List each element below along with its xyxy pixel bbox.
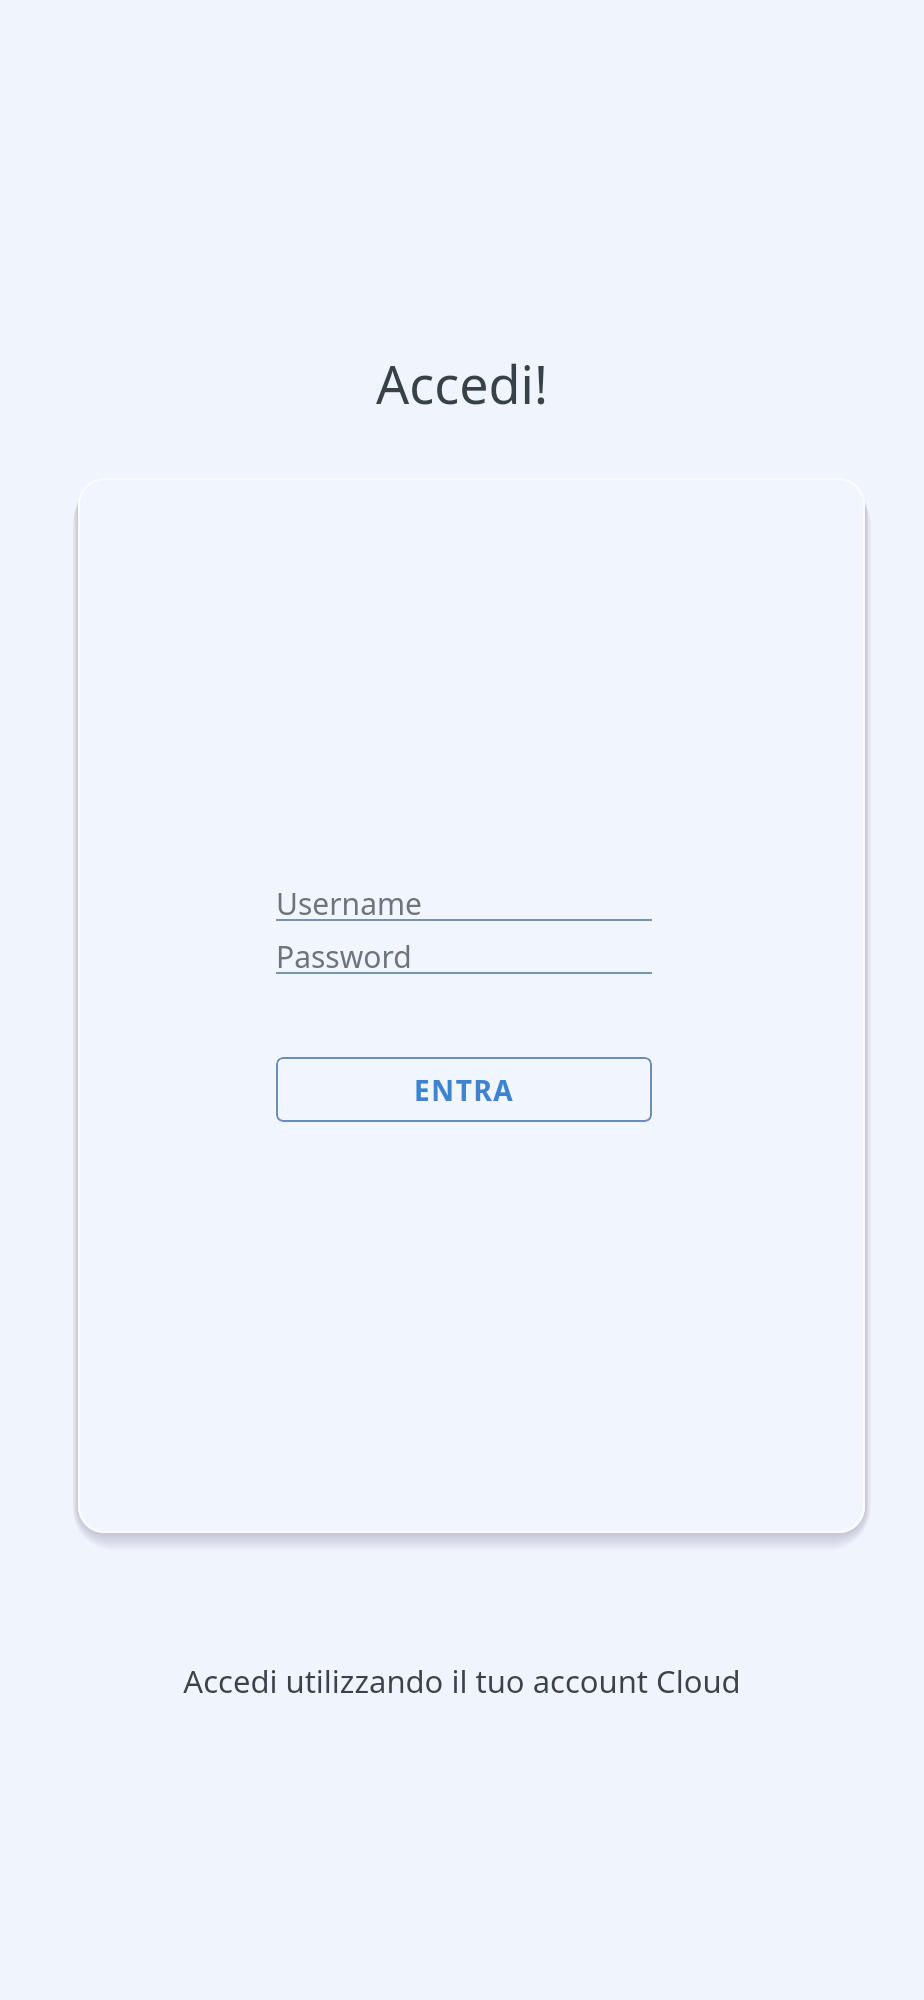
button[interactable]: Password — [276, 936, 652, 974]
staticText: Password — [276, 936, 412, 972]
staticText: ENTRA — [414, 1071, 515, 1109]
button[interactable]: Username — [276, 883, 652, 921]
button[interactable]: ENTRA — [276, 1057, 652, 1122]
staticText: Accedi! — [0, 348, 924, 419]
staticText: Accedi utilizzando il tuo account Cloud — [0, 1660, 924, 1702]
staticText: Username — [276, 883, 422, 919]
